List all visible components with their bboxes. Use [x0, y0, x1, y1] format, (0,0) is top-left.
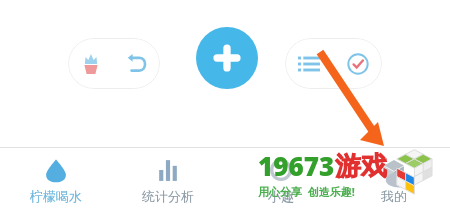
button[interactable]: 我的	[337, 148, 450, 212]
button[interactable]: Done	[333, 38, 382, 89]
staticText: 我的	[381, 188, 407, 204]
staticText: 柠檬喝水	[30, 188, 82, 204]
staticText: 用心分享 创造乐趣!	[258, 184, 355, 199]
staticText: 19673	[258, 148, 335, 183]
staticText: 小趣	[268, 188, 294, 204]
button[interactable]: Undo	[114, 38, 160, 89]
button[interactable]: 统计分析	[112, 148, 224, 212]
button[interactable]: 柠檬喝水	[0, 148, 112, 212]
staticText: 游戏	[335, 150, 387, 183]
button[interactable]: List	[285, 38, 333, 89]
button[interactable]: 小趣	[224, 148, 337, 212]
button[interactable]: Plant	[68, 38, 114, 89]
button[interactable]: Add	[196, 27, 258, 89]
staticText: 统计分析	[142, 188, 194, 204]
